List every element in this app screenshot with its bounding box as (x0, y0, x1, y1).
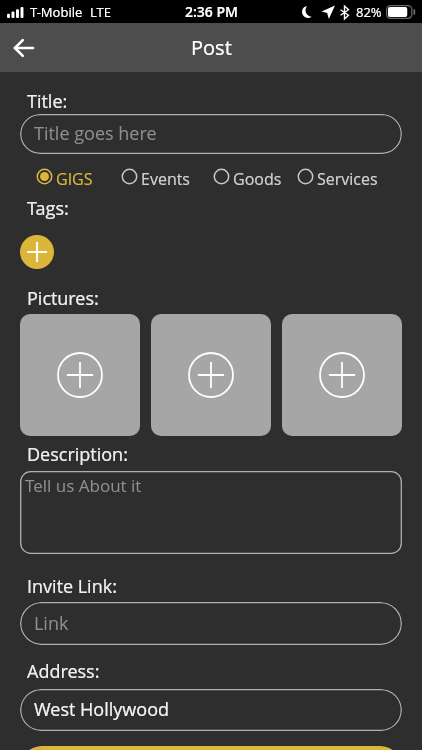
staticText: Address: (27, 659, 100, 684)
staticText: Events (141, 168, 190, 185)
button[interactable]: Add tag (20, 235, 54, 269)
button[interactable]: Tell us About it (20, 471, 402, 554)
button[interactable]: GIGS (36, 168, 93, 185)
staticText: Tell us About it (25, 474, 142, 497)
button[interactable]: Events (121, 168, 190, 185)
staticText: Link (34, 611, 69, 636)
staticText: GIGS (56, 168, 93, 185)
button[interactable]: Back (6, 30, 42, 66)
staticText: Invite Link: (27, 574, 117, 599)
staticText: Title: (27, 89, 68, 114)
staticText: Pictures: (27, 286, 99, 311)
staticText: LTE (90, 3, 111, 21)
staticText: West Hollywood (34, 697, 170, 722)
button[interactable]: Post (20, 746, 402, 750)
button[interactable]: Title goes here (20, 114, 402, 154)
button[interactable]: Add picture (20, 314, 140, 436)
staticText: Goods (233, 168, 282, 185)
staticText: Description: (27, 442, 128, 467)
staticText: Tags: (27, 196, 69, 221)
staticText: Title goes here (34, 121, 157, 146)
button[interactable]: Link (20, 602, 402, 645)
staticText: Services (317, 168, 378, 185)
button[interactable]: Goods (213, 168, 282, 185)
button[interactable]: Add picture (282, 314, 402, 436)
staticText: 82% (356, 3, 382, 21)
staticText: 2:36 PM (185, 2, 238, 21)
button[interactable]: West Hollywood (20, 689, 402, 731)
button[interactable]: Services (297, 168, 378, 185)
button[interactable]: Add picture (151, 314, 271, 436)
staticText: T-Mobile (30, 3, 83, 21)
staticText: Post (191, 34, 232, 61)
